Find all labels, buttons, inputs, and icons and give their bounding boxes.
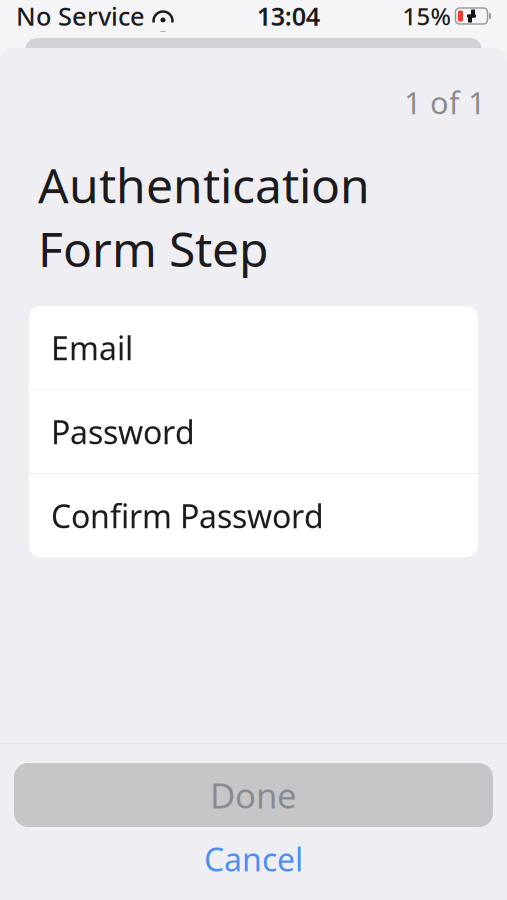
staticText: Done — [210, 772, 297, 818]
button[interactable]: Cancel — [0, 837, 507, 881]
staticText: 1 of 1 — [404, 82, 486, 123]
staticText: Confirm Password — [51, 494, 324, 537]
staticText: Email — [51, 326, 133, 369]
staticText: Authentication Form Step — [38, 153, 370, 280]
button[interactable]: Email — [29, 306, 478, 389]
staticText: 13:04 — [257, 0, 320, 33]
staticText: No Service — [16, 0, 145, 33]
button[interactable]: Confirm Password — [29, 474, 478, 557]
button[interactable]: Done — [14, 763, 493, 827]
button[interactable]: Password — [29, 390, 478, 473]
staticText: Cancel — [204, 838, 303, 880]
staticText: Password — [51, 410, 195, 453]
staticText: 15% — [402, 0, 450, 32]
